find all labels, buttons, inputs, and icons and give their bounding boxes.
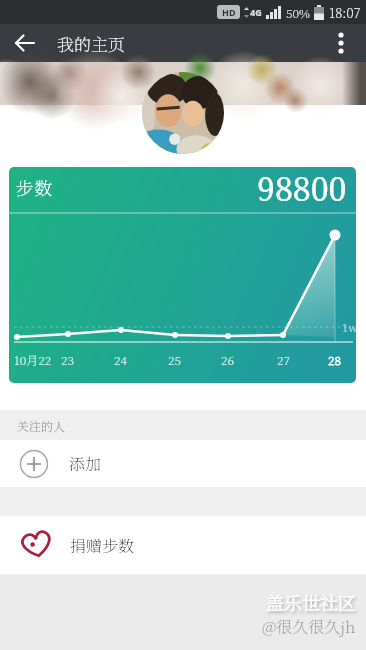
staticText: 25 (168, 351, 182, 368)
staticText: 28 (328, 351, 342, 368)
button[interactable] (8, 26, 42, 60)
staticText: 关注的人 (17, 417, 66, 434)
button[interactable]: 步数 (9, 167, 356, 383)
staticText: 1w (342, 320, 356, 335)
staticText: 18:07 (329, 3, 361, 22)
staticText: 我的主页 (57, 31, 125, 55)
staticText: 50% (286, 4, 310, 21)
staticText: 盖乐世社区 (266, 589, 356, 615)
staticText: @很久很久jh (262, 615, 356, 638)
staticText: 4G (250, 6, 262, 18)
staticText: 10月22 (14, 351, 52, 368)
staticText: 23 (61, 351, 75, 368)
staticText: 步数 (16, 174, 52, 200)
staticText: 27 (277, 351, 290, 368)
button[interactable]: 添加 (0, 440, 366, 487)
staticText: HD (222, 6, 236, 18)
button[interactable]: 捐赠步数 (0, 516, 366, 574)
staticText: 添加 (69, 452, 102, 475)
staticText: 26 (221, 351, 235, 368)
staticText: 98800 (257, 167, 347, 211)
button[interactable] (328, 30, 354, 56)
staticText: 捐赠步数 (70, 534, 135, 557)
staticText: 24 (114, 351, 128, 368)
